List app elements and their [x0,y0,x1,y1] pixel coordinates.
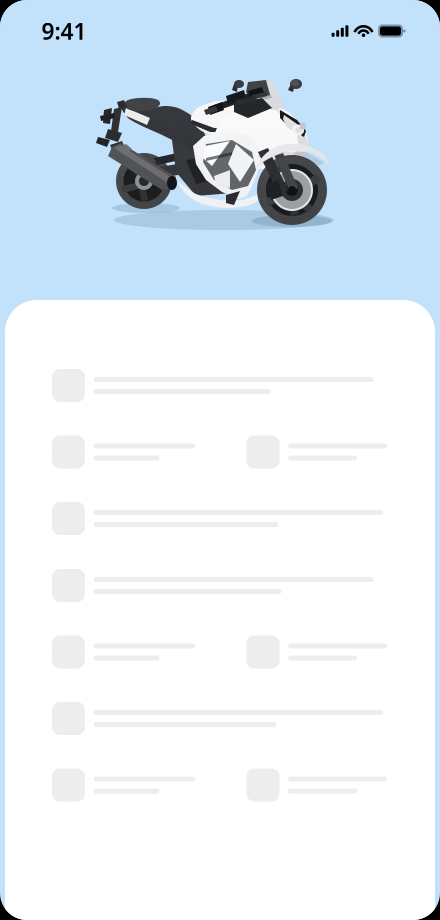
staticText: 9:41 [41,16,86,46]
